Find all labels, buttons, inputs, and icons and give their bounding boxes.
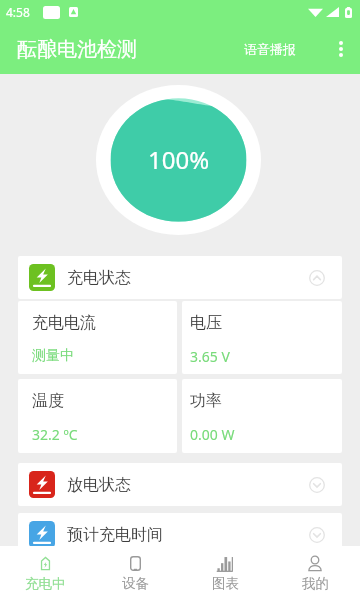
- staticText: 预计充电时间: [67, 525, 163, 545]
- staticText: 0.00 W: [190, 425, 235, 444]
- staticText: 32.2 ºC: [32, 425, 78, 444]
- staticText: 充电状态: [67, 268, 131, 288]
- staticText: 酝酿电池检测: [17, 37, 137, 62]
- staticText: 4:58: [6, 4, 30, 20]
- staticText: 我的: [302, 575, 329, 592]
- staticText: 放电状态: [67, 475, 131, 495]
- button[interactable]: 充电中: [0, 546, 90, 600]
- button[interactable]: 放电状态: [18, 463, 342, 506]
- staticText: 温度: [32, 391, 64, 411]
- button[interactable]: 我的: [270, 546, 360, 600]
- staticText: 电压: [190, 313, 222, 333]
- button[interactable]: 功率: [182, 379, 342, 453]
- button[interactable]: 充电电流: [18, 301, 177, 374]
- button[interactable]: 图表: [180, 546, 270, 600]
- button[interactable]: 电压: [182, 301, 342, 374]
- button[interactable]: 温度: [18, 379, 177, 453]
- staticText: 3.65 V: [190, 347, 230, 366]
- staticText: 100%: [148, 143, 210, 176]
- staticText: 测量中: [32, 347, 74, 365]
- button[interactable]: 语音播报: [232, 24, 308, 74]
- staticText: 充电电流: [32, 313, 96, 333]
- button[interactable]: 设备: [90, 546, 180, 600]
- button[interactable]: 充电状态: [18, 256, 342, 299]
- staticText: 功率: [190, 391, 222, 411]
- button[interactable]: More options: [322, 24, 360, 74]
- staticText: 图表: [212, 575, 239, 592]
- staticText: 设备: [122, 575, 149, 592]
- staticText: 充电中: [25, 575, 66, 592]
- button[interactable]: 预计充电时间: [18, 513, 342, 556]
- staticText: 语音播报: [244, 41, 296, 57]
